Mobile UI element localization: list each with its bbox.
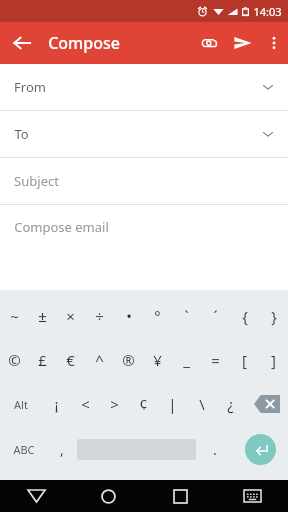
button[interactable]: .	[196, 426, 233, 472]
button[interactable]: Enter	[245, 434, 276, 465]
staticText: |	[168, 394, 177, 414]
button[interactable]: ,	[47, 426, 77, 472]
staticText: From	[14, 78, 46, 96]
staticText: ¢	[139, 394, 148, 414]
button[interactable]: `	[172, 294, 201, 338]
staticText: \	[199, 394, 205, 414]
staticText: ¿	[227, 394, 234, 414]
staticText: ´	[213, 306, 218, 326]
button[interactable]: More options	[260, 29, 288, 57]
button[interactable]: ¡	[42, 382, 71, 426]
button[interactable]: <	[71, 382, 100, 426]
button[interactable]: °	[143, 294, 172, 338]
button[interactable]: ©	[0, 338, 28, 382]
staticText: <	[81, 394, 90, 414]
staticText: >	[110, 394, 119, 414]
staticText: Compose	[48, 32, 120, 54]
staticText: ~	[10, 306, 19, 326]
button[interactable]: ¢	[129, 382, 158, 426]
staticText: Subject	[14, 172, 59, 190]
staticText: ×	[66, 306, 75, 326]
staticText: Alt	[14, 397, 28, 412]
staticText: •	[126, 306, 132, 326]
button[interactable]: •	[114, 294, 143, 338]
button[interactable]: \	[187, 382, 216, 426]
button[interactable]: From	[0, 64, 288, 110]
button[interactable]: Send	[226, 26, 260, 60]
button[interactable]: ]	[259, 338, 288, 382]
staticText: `	[184, 306, 189, 326]
staticText: £	[38, 350, 47, 370]
button[interactable]: ÷	[85, 294, 114, 338]
button[interactable]: ´	[201, 294, 230, 338]
staticText: €	[66, 350, 75, 370]
button[interactable]: ±	[28, 294, 56, 338]
staticText: ]	[271, 350, 276, 370]
staticText: 14:03	[253, 4, 282, 19]
button[interactable]: ×	[56, 294, 85, 338]
button[interactable]: Attach file	[192, 26, 226, 60]
staticText: To	[14, 125, 29, 143]
staticText: ±	[38, 306, 47, 326]
staticText: {	[242, 306, 248, 326]
staticText: °	[154, 306, 161, 326]
button[interactable]: Compose email	[0, 205, 288, 249]
button[interactable]: ^	[85, 338, 114, 382]
staticText: ^	[95, 350, 104, 370]
button[interactable]: [	[230, 338, 259, 382]
button[interactable]: }	[259, 294, 288, 338]
staticText: [	[242, 350, 247, 370]
button[interactable]: >	[100, 382, 129, 426]
button[interactable]: £	[28, 338, 56, 382]
button[interactable]: Change keyboard	[216, 480, 288, 512]
button[interactable]: Home	[72, 480, 144, 512]
button[interactable]: Recents	[144, 480, 216, 512]
button[interactable]: Backspace	[245, 382, 288, 426]
button[interactable]: ¥	[143, 338, 172, 382]
staticText: ¥	[153, 350, 162, 370]
button[interactable]: Back	[6, 27, 38, 59]
staticText: }	[271, 306, 277, 326]
button[interactable]: Close keyboard	[0, 480, 72, 512]
button[interactable]: To	[0, 111, 288, 157]
staticText: ÷	[95, 306, 104, 326]
staticText: ,	[60, 440, 64, 459]
button[interactable]: ¿	[216, 382, 245, 426]
button[interactable]: ®	[114, 338, 143, 382]
button[interactable]: Subject	[0, 158, 288, 204]
staticText: ®	[122, 350, 135, 370]
staticText: ABC	[13, 442, 35, 457]
staticText: =	[211, 350, 220, 370]
button[interactable]: ~	[0, 294, 28, 338]
button[interactable]: €	[56, 338, 85, 382]
button[interactable]: |	[158, 382, 187, 426]
staticText: .	[213, 440, 217, 459]
button[interactable]: ABC	[0, 426, 47, 472]
button[interactable]: _	[172, 338, 201, 382]
button[interactable]: =	[201, 338, 230, 382]
staticText: Compose email	[14, 218, 109, 236]
button[interactable]: {	[230, 294, 259, 338]
staticText: _	[183, 350, 190, 370]
button[interactable]: Alt	[0, 382, 42, 426]
staticText: ©	[8, 350, 21, 370]
staticText: ¡	[54, 394, 59, 414]
